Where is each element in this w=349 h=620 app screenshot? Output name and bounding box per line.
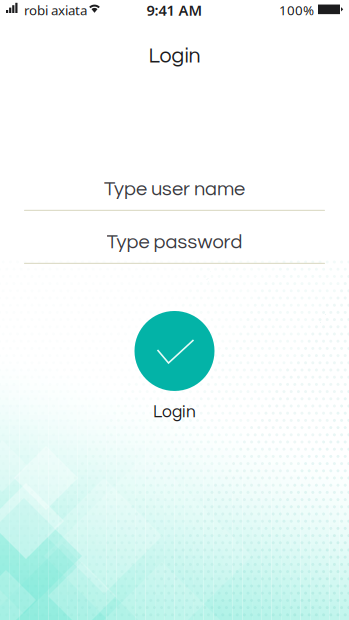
button[interactable]: Type password: [24, 232, 325, 264]
button[interactable]: Type user name: [24, 179, 325, 211]
staticText: Login: [153, 403, 196, 421]
button[interactable]: Login: [134, 311, 214, 421]
staticText: 100%: [279, 1, 314, 19]
staticText: Type user name: [104, 179, 245, 200]
staticText: Login: [148, 45, 200, 67]
staticText: Type password: [106, 232, 242, 253]
staticText: robi axiata: [24, 1, 87, 19]
staticText: 9:41 AM: [146, 0, 202, 20]
